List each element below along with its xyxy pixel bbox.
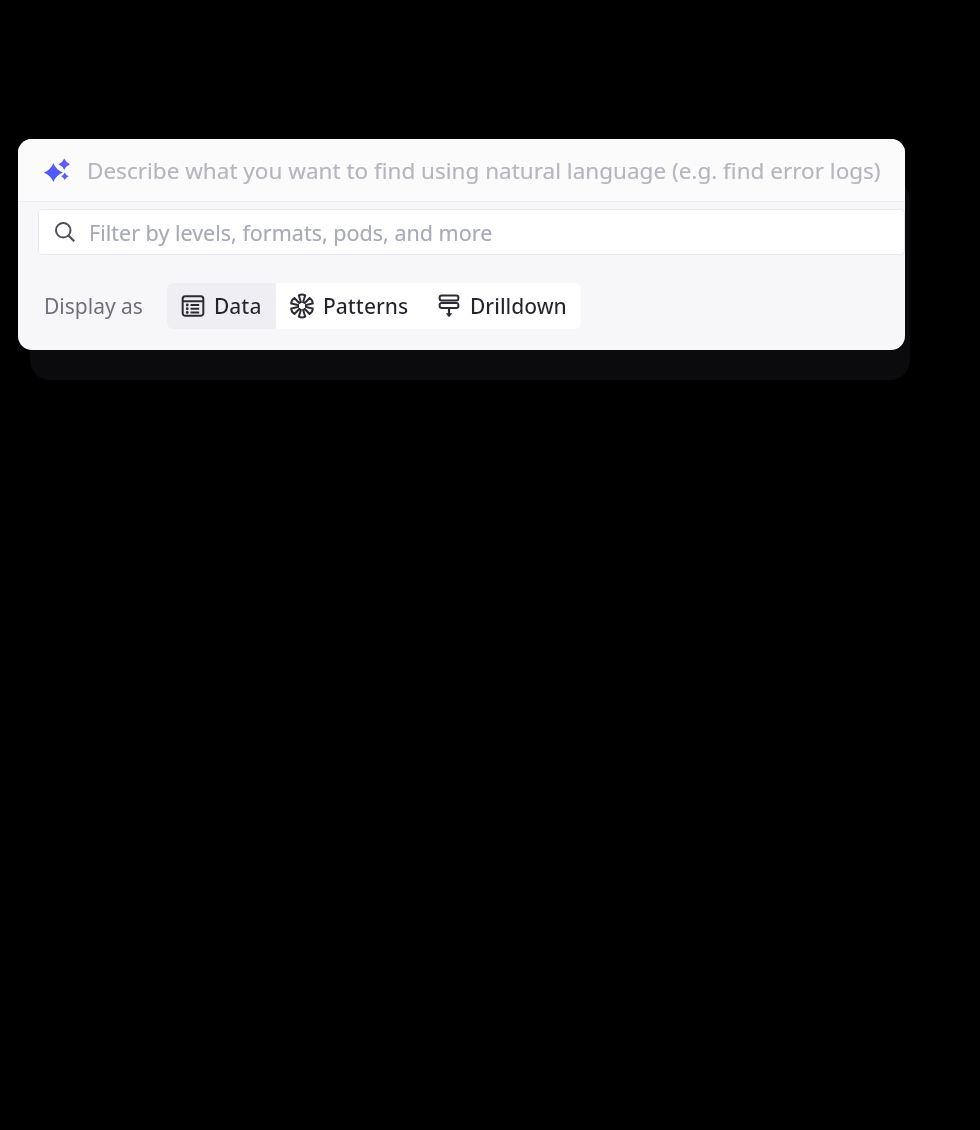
staticText: Describe what you want to find using nat… bbox=[87, 155, 881, 186]
staticText: Display as bbox=[44, 292, 143, 321]
button[interactable]: Patterns bbox=[276, 283, 423, 329]
staticText: Filter by levels, formats, pods, and mor… bbox=[89, 218, 493, 247]
staticText: Patterns bbox=[323, 292, 409, 321]
button[interactable]: Search bbox=[38, 209, 905, 255]
staticText: Drilldown bbox=[470, 292, 567, 321]
other: AI assist bbox=[44, 157, 70, 183]
button[interactable]: AI assist bbox=[18, 139, 905, 201]
staticText: Data bbox=[214, 292, 262, 321]
button[interactable]: Data bbox=[167, 283, 276, 329]
button[interactable]: Drilldown bbox=[423, 283, 581, 329]
other: Search bbox=[54, 221, 76, 243]
